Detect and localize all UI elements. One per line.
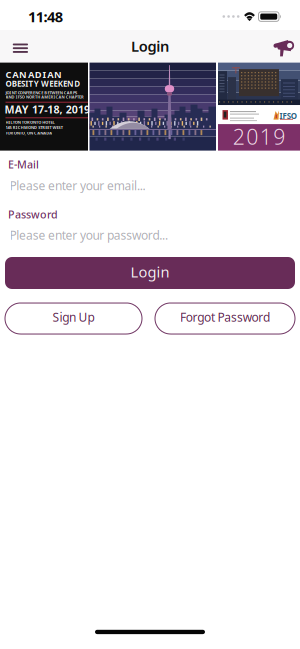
staticText: TORONTO, ON CANADA (5, 130, 52, 136)
staticText: 145 RICHMOND STREET WEST (5, 125, 63, 130)
staticText: JOINT CONFERENCE BETWEEN CARPS (5, 90, 77, 95)
staticText: Login (131, 36, 169, 56)
staticText: MAY 17-18, 2019 (5, 102, 90, 116)
button[interactable]: Announcements (273, 39, 294, 57)
button[interactable]: Menu (8, 37, 32, 59)
staticText: AND IFSO NORTH AMERICAN CHAPTER (5, 94, 84, 99)
staticText: 11:48 (28, 7, 63, 26)
staticText: Login (130, 262, 169, 281)
staticText: Password (8, 207, 58, 221)
button[interactable]: Sign Up (5, 303, 142, 334)
staticText: Sign Up (53, 309, 94, 325)
staticText: CANADIAN (5, 68, 62, 81)
button[interactable]: Login (5, 257, 295, 289)
button[interactable]: Forgot Password (155, 303, 295, 334)
staticText: E-Mail (8, 157, 39, 171)
staticText: Forgot Password (180, 309, 270, 325)
staticText: Please enter your password... (9, 227, 168, 243)
staticText: Please enter your email... (9, 178, 145, 193)
staticText: 2019 (233, 122, 285, 150)
staticText: OBESITY WEEKEND (5, 78, 80, 89)
staticText: HILTON TORONTO HOTEL (5, 119, 54, 125)
staticText: IFSO (279, 111, 297, 121)
